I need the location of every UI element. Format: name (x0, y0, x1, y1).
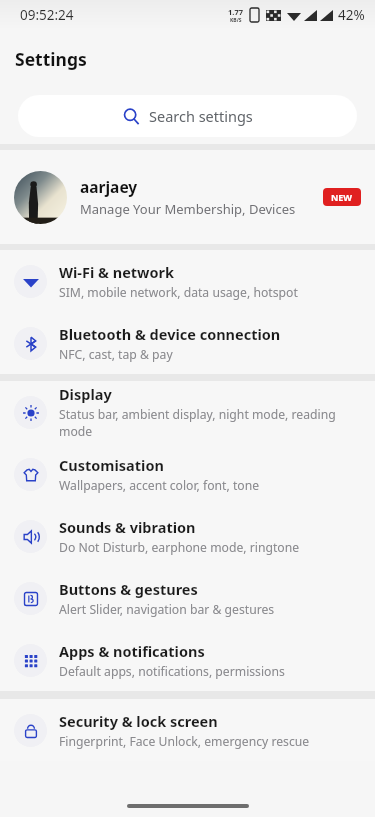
staticText: Display (59, 384, 112, 404)
button[interactable]: aarjaey (0, 150, 375, 244)
button[interactable]: Customisation (0, 443, 375, 505)
button[interactable]: Search settings (18, 95, 357, 137)
button[interactable]: Display (0, 381, 375, 443)
staticText: Manage Your Membership, Devices (80, 200, 296, 218)
staticText: Customisation (59, 455, 164, 475)
button[interactable]: Apps & notifications (0, 629, 375, 691)
button[interactable]: Bluetooth & device connection (0, 312, 375, 374)
staticText: Default apps, notifications, permissions (59, 663, 285, 680)
staticText: Apps & notifications (59, 641, 205, 661)
staticText: 1.77 (228, 7, 243, 17)
staticText: Status bar, ambient display, night mode,… (59, 406, 361, 440)
staticText: 42% (338, 6, 365, 24)
button[interactable]: Buttons & gestures (0, 567, 375, 629)
staticText: KB/S (230, 17, 242, 24)
staticText: NEW (331, 191, 353, 203)
button[interactable]: Security & lock screen (0, 699, 375, 761)
staticText: Bluetooth & device connection (59, 324, 281, 344)
button[interactable]: Sounds & vibration (0, 505, 375, 567)
staticText: Search settings (149, 106, 253, 126)
staticText: 09:52:24 (20, 6, 74, 24)
staticText: Alert Slider, navigation bar & gestures (59, 601, 275, 618)
staticText: Sounds & vibration (59, 517, 196, 537)
staticText: aarjaey (80, 176, 138, 197)
staticText: Buttons & gestures (59, 579, 198, 599)
button[interactable]: Wi-Fi & network (0, 250, 375, 312)
staticText: Do Not Disturb, earphone mode, ringtone (59, 539, 300, 556)
staticText: Wallpapers, accent color, font, tone (59, 477, 260, 494)
staticText: NFC, cast, tap & pay (59, 346, 173, 363)
staticText: Settings (15, 47, 87, 71)
staticText: Security & lock screen (59, 711, 218, 731)
staticText: Fingerprint, Face Unlock, emergency resc… (59, 733, 310, 750)
staticText: SIM, mobile network, data usage, hotspot (59, 284, 298, 301)
staticText: Wi-Fi & network (59, 262, 175, 282)
